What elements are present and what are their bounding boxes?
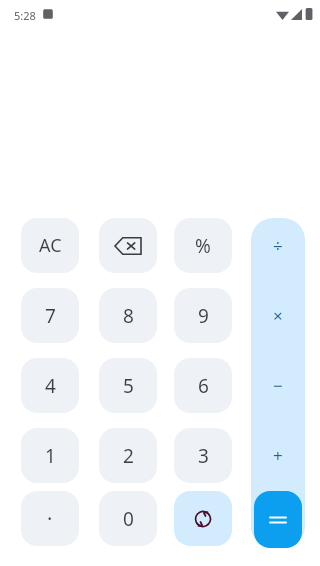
- button[interactable]: Backspace: [99, 218, 157, 273]
- staticText: AC: [39, 233, 62, 258]
- staticText: 6: [198, 373, 209, 399]
- staticText: 9: [198, 303, 209, 329]
- staticText: 0: [123, 506, 134, 532]
- staticText: −: [273, 374, 283, 397]
- button[interactable]: Multiply: [251, 288, 305, 343]
- staticText: ·: [47, 505, 53, 532]
- staticText: 5:28: [14, 8, 36, 23]
- button[interactable]: ·: [21, 491, 79, 546]
- staticText: 5: [123, 373, 134, 399]
- button[interactable]: Add: [251, 428, 305, 483]
- staticText: 4: [45, 373, 56, 399]
- staticText: 3: [198, 443, 209, 469]
- staticText: +: [273, 444, 283, 467]
- staticText: ÷: [273, 234, 283, 257]
- staticText: ×: [273, 304, 283, 327]
- button[interactable]: 8: [99, 288, 157, 343]
- button[interactable]: 1: [21, 428, 79, 483]
- staticText: 2: [123, 443, 134, 469]
- button[interactable]: 3: [174, 428, 232, 483]
- button[interactable]: 5: [99, 358, 157, 413]
- staticText: 7: [45, 303, 56, 329]
- button[interactable]: 7: [21, 288, 79, 343]
- staticText: 1: [45, 443, 56, 469]
- staticText: 8: [123, 303, 134, 329]
- button[interactable]: 6: [174, 358, 232, 413]
- button[interactable]: Equals: [254, 491, 302, 548]
- button[interactable]: AC: [21, 218, 79, 273]
- button[interactable]: 9: [174, 288, 232, 343]
- button[interactable]: %: [174, 218, 232, 273]
- staticText: %: [195, 233, 211, 259]
- button[interactable]: 4: [21, 358, 79, 413]
- button[interactable]: 2: [99, 428, 157, 483]
- button[interactable]: Subtract: [251, 358, 305, 413]
- button[interactable]: Divide: [251, 218, 305, 273]
- button[interactable]: 0: [99, 491, 157, 546]
- button[interactable]: Switch units: [174, 491, 232, 546]
